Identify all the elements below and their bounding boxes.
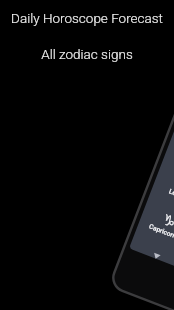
staticText: All zodiac signs (41, 46, 133, 62)
staticText: Capricorn (148, 222, 174, 240)
staticText: Daily Horoscope Forecast (11, 10, 163, 26)
staticText: ♑ (160, 211, 174, 230)
staticText: Leo (168, 187, 174, 199)
